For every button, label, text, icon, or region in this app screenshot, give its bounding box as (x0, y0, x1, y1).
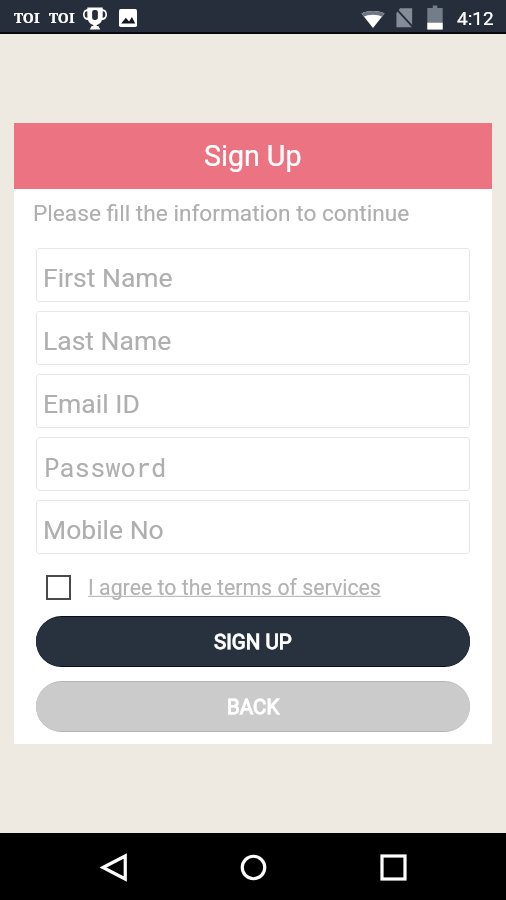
staticText: TOI (49, 8, 75, 27)
staticText: TOI (14, 8, 40, 27)
button[interactable]: Email ID (36, 374, 470, 428)
button[interactable]: BACK (36, 682, 470, 731)
staticText: Last Name (43, 325, 172, 356)
button[interactable]: Mobile No (36, 500, 470, 554)
button[interactable]: Recent apps (367, 841, 419, 893)
button[interactable]: Last Name (36, 311, 470, 365)
staticText: BACK (227, 695, 280, 719)
staticText: Mobile No (43, 514, 164, 545)
button[interactable]: SIGN UP (36, 617, 470, 666)
staticText: Please fill the information to continue (33, 200, 410, 227)
staticText: I agree to the terms of services (88, 575, 381, 600)
staticText: 4:12 (457, 7, 494, 29)
button[interactable]: Home (227, 841, 279, 893)
staticText: First Name (43, 262, 173, 293)
staticText: SIGN UP (214, 630, 292, 654)
button[interactable]: I agree to the terms of services (36, 575, 470, 600)
button[interactable]: Password (36, 437, 470, 491)
staticText: Email ID (43, 388, 140, 419)
staticText: Password (44, 450, 167, 484)
button[interactable]: Back (88, 841, 140, 893)
staticText: Sign Up (204, 139, 302, 173)
button[interactable]: First Name (36, 248, 470, 302)
